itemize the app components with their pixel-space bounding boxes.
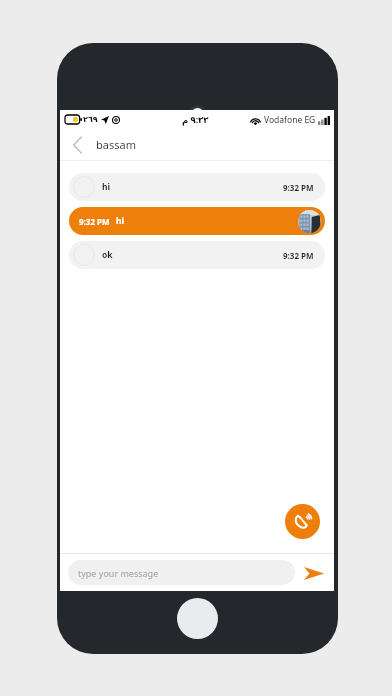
staticText: ٩:٣٣ م — [182, 114, 209, 126]
button[interactable]: ok — [69, 241, 325, 269]
staticText: type your message — [78, 567, 159, 579]
button[interactable]: Send — [302, 561, 326, 585]
staticText: 9:32 PM — [283, 182, 314, 193]
staticText: Vodafone EG — [264, 114, 316, 126]
staticText: hi — [116, 215, 125, 227]
staticText: bassam — [96, 137, 136, 152]
staticText: ok — [102, 249, 113, 261]
button[interactable]: hi — [69, 173, 325, 201]
button[interactable]: Voice call — [285, 504, 320, 539]
staticText: ٢٦٩ — [83, 115, 98, 124]
staticText: 9:32 PM — [283, 250, 314, 261]
button[interactable]: type your message — [68, 560, 295, 585]
staticText: hi — [102, 181, 111, 193]
button[interactable]: Back — [60, 129, 94, 160]
staticText: 9:32 PM — [79, 216, 110, 227]
button[interactable]: 9:32 PM — [69, 207, 325, 235]
